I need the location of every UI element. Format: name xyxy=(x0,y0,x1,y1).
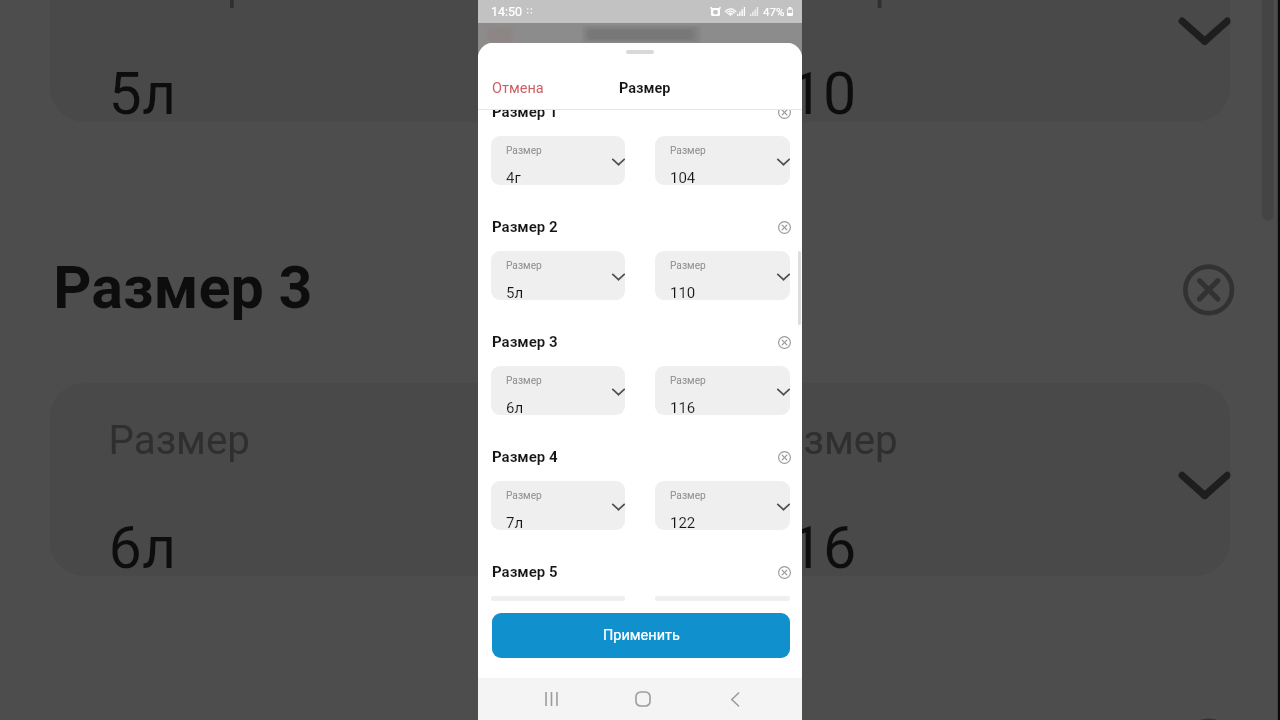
staticText: Размер xyxy=(506,260,542,272)
staticText: 7л xyxy=(506,514,524,530)
staticText: Размер xyxy=(506,145,542,157)
staticText: 6л xyxy=(109,513,180,576)
button[interactable]: Размер xyxy=(655,251,790,300)
staticText: Размер xyxy=(506,490,542,502)
staticText: 110 xyxy=(756,59,859,122)
staticText: Размер xyxy=(670,490,706,502)
button[interactable]: Удалить Размер 3 xyxy=(773,331,795,353)
button[interactable]: Recent apps xyxy=(530,678,572,720)
staticText: Размер xyxy=(506,375,542,387)
staticText: Размер 4 xyxy=(492,448,558,466)
staticText: Размер xyxy=(756,0,899,11)
staticText: Размер xyxy=(670,375,706,387)
staticText: Размер 1 xyxy=(492,110,558,121)
staticText: 47% xyxy=(763,5,785,18)
staticText: 14:50 xyxy=(491,4,523,19)
button[interactable]: Размер xyxy=(655,366,790,415)
staticText: 4г xyxy=(506,169,521,185)
staticText: Отмена xyxy=(492,80,544,97)
button[interactable]: Размер xyxy=(491,481,625,530)
staticText: Размер 2 xyxy=(492,218,558,236)
staticText: Размер xyxy=(109,0,251,11)
staticText: Размер xyxy=(619,80,671,97)
staticText: 116 xyxy=(670,399,696,415)
button[interactable]: Удалить Размер 2 xyxy=(773,216,795,238)
button[interactable]: Удалить Размер 1 xyxy=(773,110,795,123)
staticText: 110 xyxy=(670,284,696,300)
button[interactable]: Back xyxy=(714,678,756,720)
button[interactable]: Размер xyxy=(491,251,625,300)
staticText: Размер 3 xyxy=(53,252,314,323)
button[interactable]: Размер xyxy=(655,481,790,530)
button[interactable]: Размер xyxy=(491,366,625,415)
staticText: 104 xyxy=(670,169,696,185)
staticText: Размер 3 xyxy=(492,333,558,351)
staticText: Применить xyxy=(603,627,680,644)
button[interactable]: Размер xyxy=(491,136,625,185)
staticText: 5л xyxy=(109,59,180,122)
staticText: Размер xyxy=(670,260,706,272)
staticText: Размер 5 xyxy=(492,563,558,581)
staticText: 116 xyxy=(756,513,859,576)
staticText: Размер xyxy=(756,418,899,466)
button[interactable]: Размер xyxy=(655,136,790,185)
staticText: Размер xyxy=(670,145,706,157)
button[interactable]: Удалить Размер 4 xyxy=(773,446,795,468)
staticText: 5л xyxy=(506,284,524,300)
staticText: 6л xyxy=(506,399,524,415)
button[interactable]: Home xyxy=(622,678,664,720)
button[interactable]: Удалить Размер 5 xyxy=(773,561,795,583)
button[interactable]: Применить xyxy=(492,613,790,658)
staticText: Размер xyxy=(109,418,251,466)
button[interactable]: Отмена xyxy=(478,73,556,104)
staticText: 122 xyxy=(670,514,696,530)
